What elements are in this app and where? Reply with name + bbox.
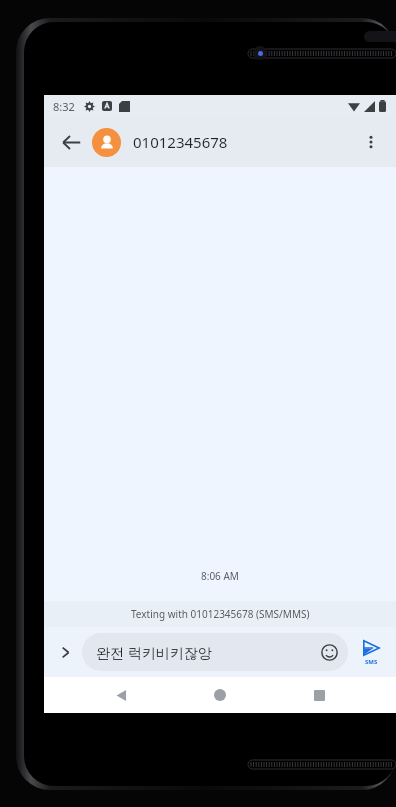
button[interactable]: Contact avatar bbox=[92, 128, 121, 157]
button[interactable]: Back bbox=[99, 677, 143, 713]
button[interactable]: Back bbox=[54, 125, 88, 159]
button[interactable]: 완전 럭키비키잖앙 bbox=[82, 633, 348, 671]
staticText: Texting with 01012345678 (SMS/MMS) bbox=[131, 607, 310, 621]
button[interactable]: Recent apps bbox=[297, 677, 341, 713]
staticText: 8:06 AM bbox=[201, 569, 239, 583]
button[interactable]: More options bbox=[354, 125, 388, 159]
button[interactable]: Send SMS bbox=[352, 633, 390, 671]
button[interactable]: Expand bbox=[50, 637, 80, 667]
staticText: 01012345678 bbox=[133, 132, 228, 152]
button[interactable]: Home bbox=[198, 677, 242, 713]
staticText: SMS bbox=[365, 658, 378, 666]
staticText: 완전 럭키비키잖앙 bbox=[96, 643, 212, 662]
staticText: 8:32 bbox=[53, 99, 75, 114]
button[interactable]: Insert emoji bbox=[315, 638, 343, 666]
